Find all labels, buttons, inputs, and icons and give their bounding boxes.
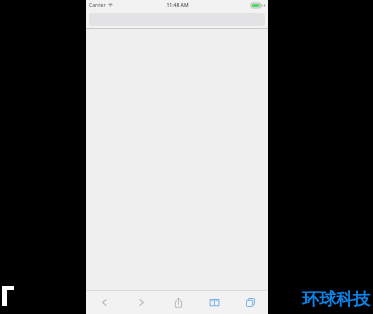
button[interactable]: Share xyxy=(160,290,196,314)
staticText: 环球科技 xyxy=(302,289,370,310)
button[interactable]: Forward xyxy=(123,290,160,314)
button[interactable]: Tabs xyxy=(232,290,268,314)
staticText: 11:48 AM xyxy=(166,2,189,9)
staticText: Carrier xyxy=(89,2,106,9)
button[interactable]: Back xyxy=(86,290,123,314)
button[interactable]: Bookmarks xyxy=(196,290,232,314)
